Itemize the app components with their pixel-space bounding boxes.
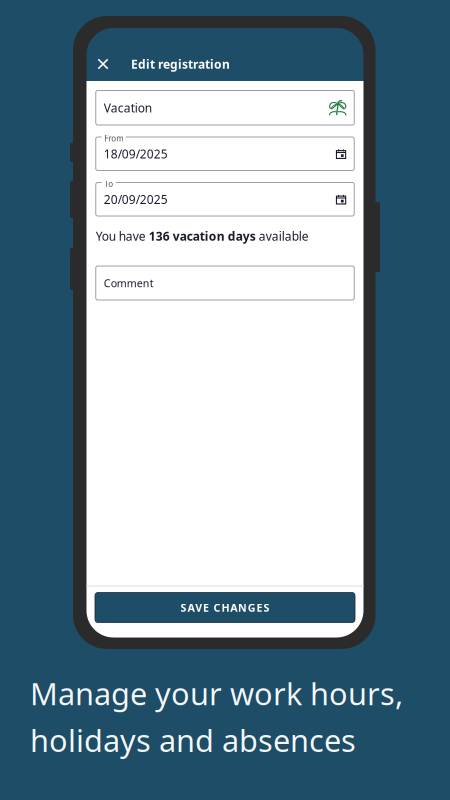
- staticText: Manage your work hours,: [30, 673, 403, 714]
- button[interactable]: Vacation: [96, 90, 354, 125]
- staticText: To: [104, 178, 113, 189]
- button[interactable]: Edit registration: [114, 56, 230, 72]
- button[interactable]: 18/09/2025: [96, 137, 354, 170]
- staticText: Comment: [104, 276, 154, 290]
- staticText: SAVE CHANGES: [181, 600, 269, 615]
- staticText: 18/09/2025: [104, 146, 168, 162]
- button[interactable]: Close: [92, 53, 114, 75]
- button[interactable]: SAVE CHANGES: [95, 592, 355, 622]
- staticText: holidays and absences: [30, 720, 356, 760]
- staticText: You have 136 vacation days available: [96, 228, 309, 244]
- staticText: 20/09/2025: [104, 191, 168, 207]
- staticText: Edit registration: [131, 56, 230, 72]
- staticText: Vacation: [104, 100, 152, 116]
- button[interactable]: Comment: [96, 266, 354, 300]
- staticText: From: [104, 133, 123, 144]
- button[interactable]: 20/09/2025: [96, 182, 354, 216]
